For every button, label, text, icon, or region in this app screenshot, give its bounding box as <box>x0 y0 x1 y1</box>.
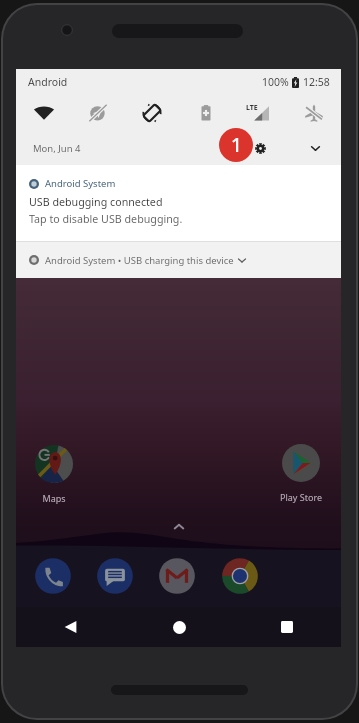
staticText: 12:58 <box>303 75 330 89</box>
button[interactable]: Wi-Fi <box>16 94 71 131</box>
staticText: Android System • USB charging this devic… <box>45 254 234 267</box>
staticText: LTE <box>246 103 258 113</box>
staticText: USB debugging connected <box>29 195 163 210</box>
button[interactable]: Maps <box>19 445 89 504</box>
button[interactable]: Recent apps <box>233 607 341 647</box>
staticText: Android System <box>45 177 116 190</box>
button[interactable]: Auto-rotate <box>125 94 179 131</box>
button[interactable]: Back <box>16 607 125 647</box>
button[interactable]: Messages <box>96 557 134 595</box>
button[interactable]: Phone <box>34 557 72 595</box>
button[interactable]: Settings <box>248 136 273 161</box>
button[interactable]: Home <box>125 607 233 647</box>
button[interactable]: Mobile data LTE <box>233 94 287 131</box>
staticText: Maps <box>42 492 66 504</box>
button[interactable]: Android System <box>16 165 341 241</box>
button[interactable]: Gmail <box>158 557 196 595</box>
button[interactable]: Open app drawer <box>165 514 192 538</box>
button[interactable]: Chrome <box>221 557 259 595</box>
staticText: 1 <box>231 132 242 158</box>
staticText: 100% <box>262 75 289 89</box>
staticText: Mon, Jun 4 <box>33 142 81 155</box>
staticText: Tap to disable USB debugging. <box>29 212 183 227</box>
button[interactable]: Play Store <box>266 444 336 503</box>
button[interactable]: Airplane mode <box>287 94 341 131</box>
button[interactable]: Battery saver <box>179 94 233 131</box>
staticText: Android <box>28 75 68 89</box>
button[interactable]: Expand quick settings <box>303 136 328 161</box>
button[interactable]: Android System • USB charging this devic… <box>16 242 341 278</box>
staticText: Play Store <box>280 491 322 503</box>
button[interactable]: Location off <box>71 94 125 131</box>
